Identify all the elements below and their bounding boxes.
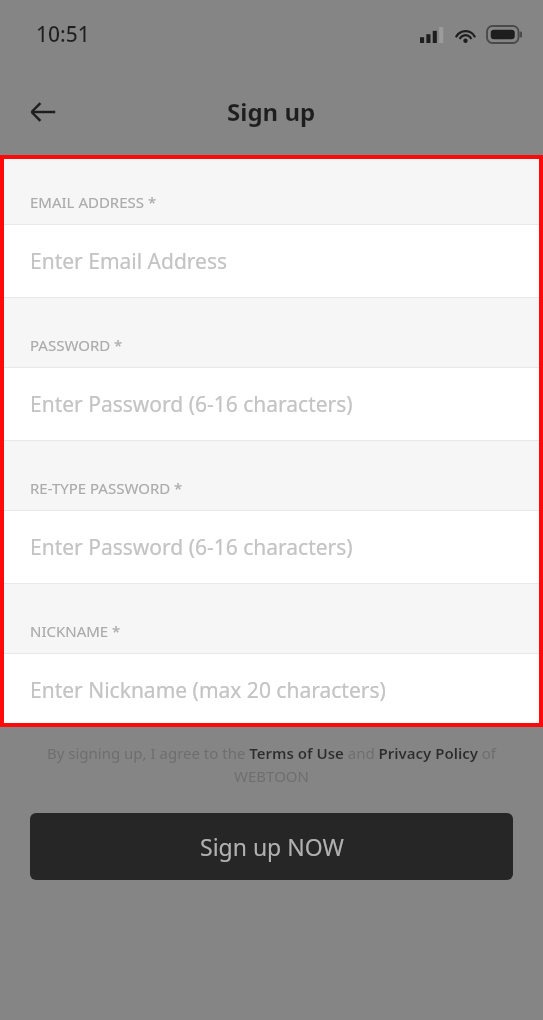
staticText: By signing up, I agree to the Terms of U… xyxy=(22,743,521,786)
staticText: Enter Password (6-16 characters) xyxy=(30,390,353,419)
staticText: PASSWORD * xyxy=(30,335,123,355)
button[interactable]: Enter Password (6-16 characters) xyxy=(0,511,543,583)
staticText: NICKNAME * xyxy=(30,621,121,641)
button[interactable]: Enter Email Address xyxy=(0,225,543,297)
button[interactable]: Enter Nickname (max 20 characters) xyxy=(0,654,543,726)
staticText: Enter Password (6-16 characters) xyxy=(30,533,353,562)
staticText: Sign up NOW xyxy=(200,831,344,862)
staticText: EMAIL ADDRESS * xyxy=(30,192,157,212)
staticText: RE-TYPE PASSWORD * xyxy=(30,478,183,498)
button[interactable]: Sign up NOW xyxy=(30,813,513,880)
staticText: Sign up xyxy=(227,95,316,128)
button[interactable]: Enter Password (6-16 characters) xyxy=(0,368,543,440)
button[interactable]: Back xyxy=(19,88,67,136)
staticText: Enter Nickname (max 20 characters) xyxy=(30,676,386,705)
staticText: Enter Email Address xyxy=(30,247,228,276)
staticText: 10:51 xyxy=(36,20,90,49)
